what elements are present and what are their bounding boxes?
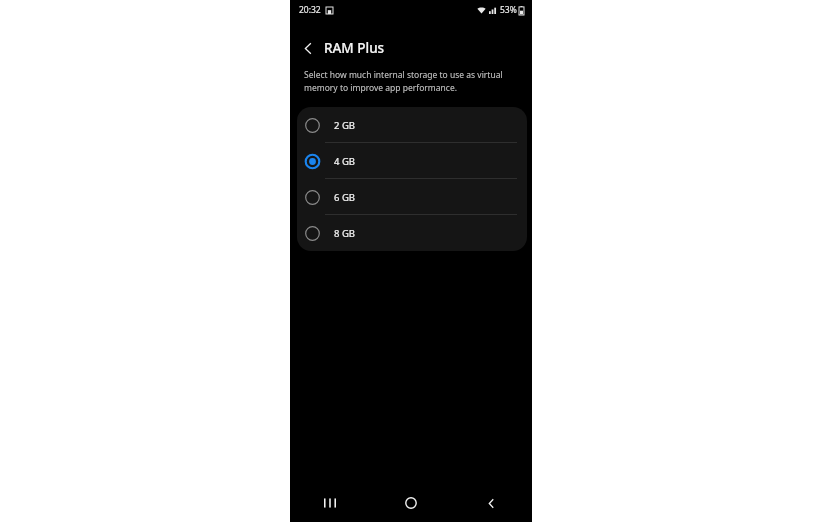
button[interactable]: 8 GB xyxy=(297,215,527,251)
staticText: Select how much internal storage to use … xyxy=(304,69,514,94)
staticText: 4 GB xyxy=(334,155,355,168)
staticText: 6 GB xyxy=(334,191,355,204)
staticText: 53% xyxy=(500,4,517,16)
button[interactable]: Home xyxy=(370,484,451,522)
button[interactable]: Back xyxy=(451,484,532,522)
button[interactable]: Back xyxy=(296,36,320,60)
button[interactable]: 6 GB xyxy=(297,179,527,215)
staticText: 20:32 xyxy=(299,4,321,16)
button[interactable]: Recents xyxy=(290,484,370,522)
staticText: 8 GB xyxy=(334,227,355,240)
button[interactable]: 4 GB xyxy=(297,143,527,179)
staticText: RAM Plus xyxy=(324,39,385,57)
button[interactable]: 2 GB xyxy=(297,107,527,143)
staticText: 2 GB xyxy=(334,119,355,132)
